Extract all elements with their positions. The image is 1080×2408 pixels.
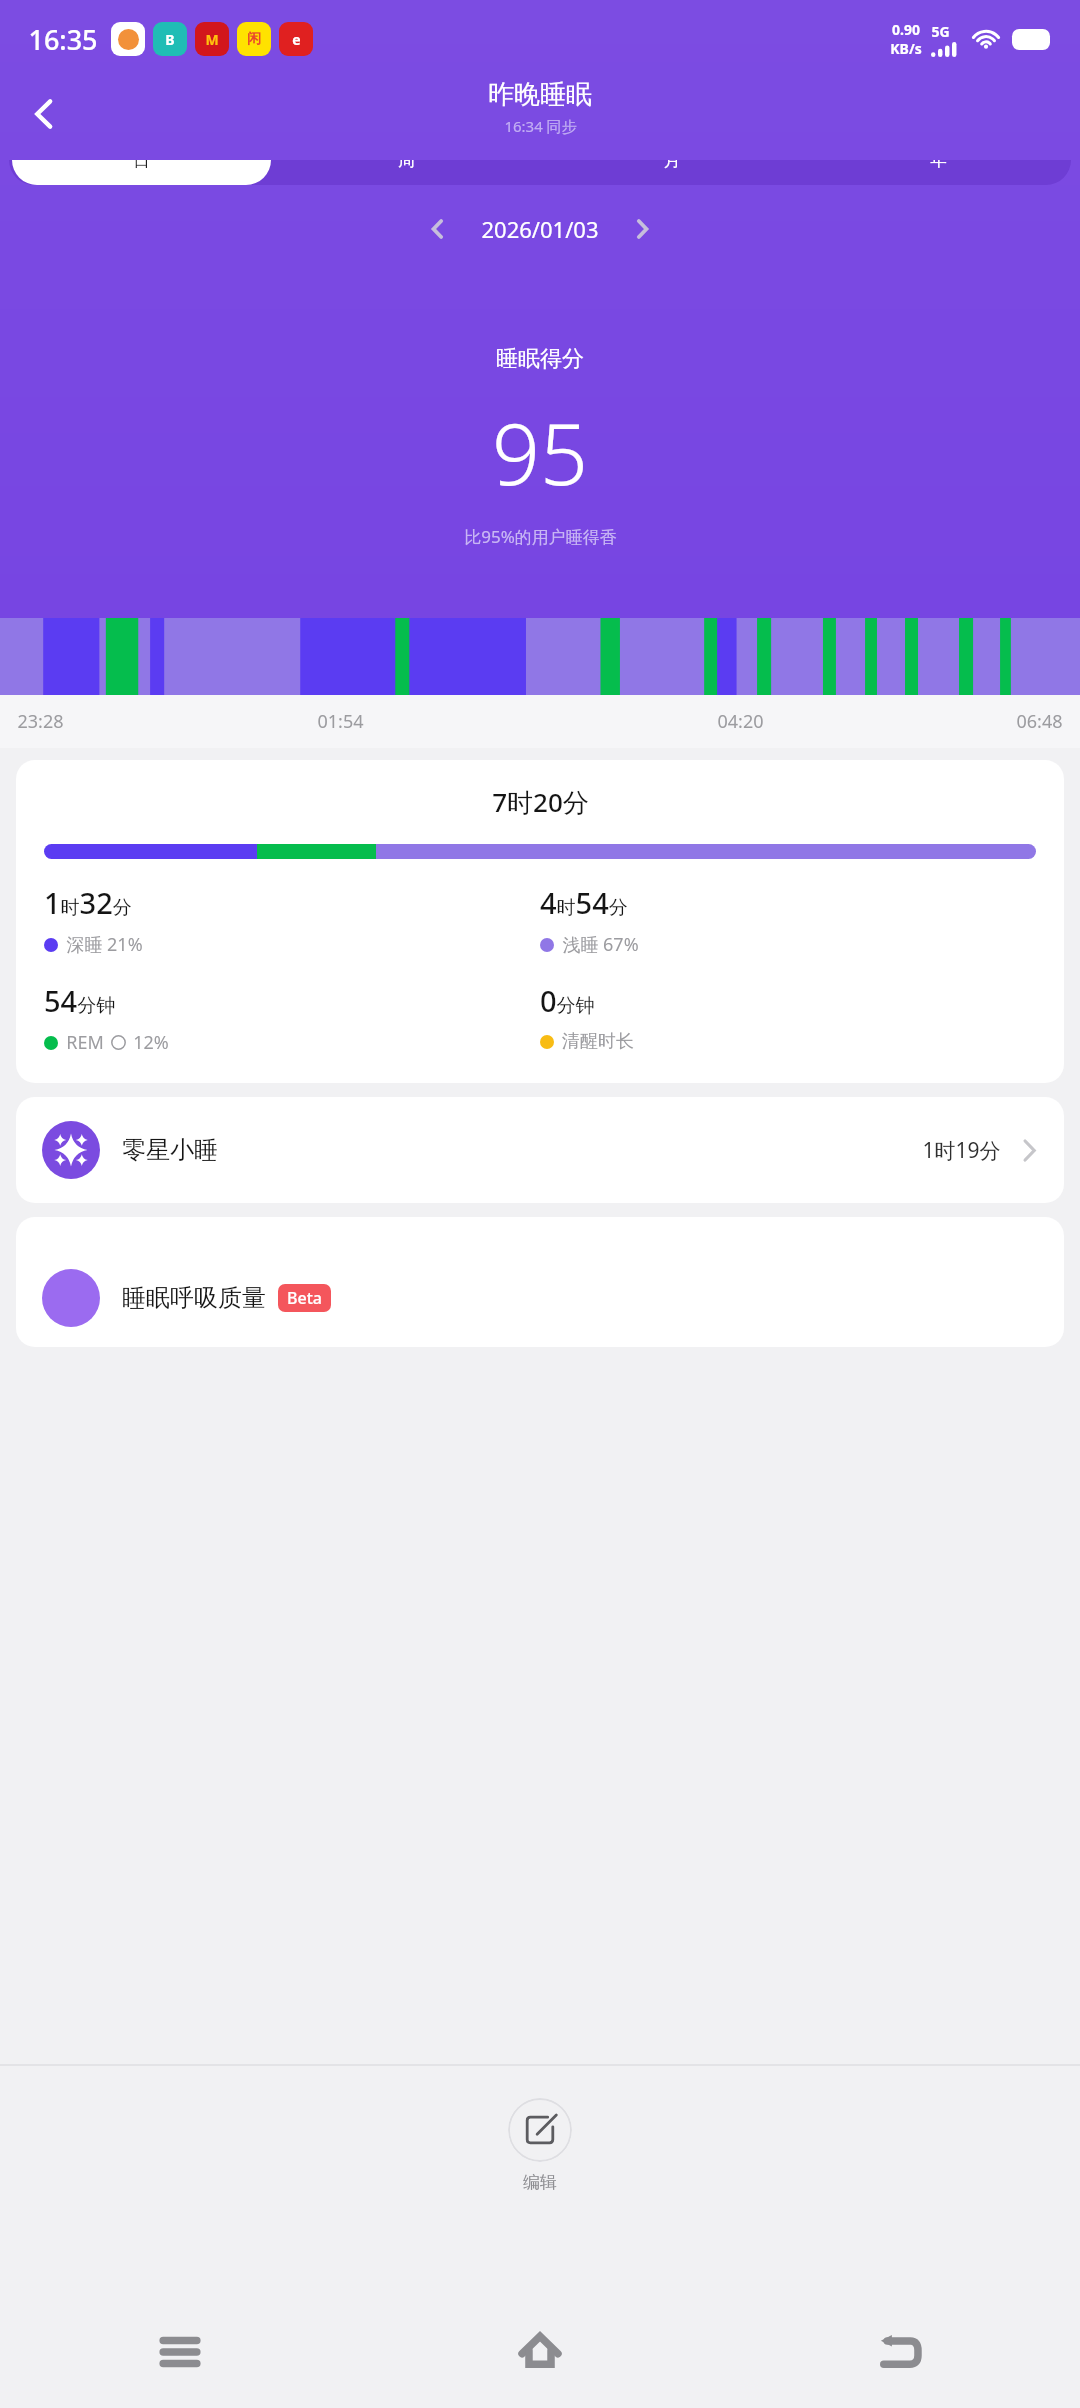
staticText: 周 [398, 160, 415, 171]
staticText: 16:34 同步 [504, 116, 577, 136]
staticText: REM [66, 1030, 104, 1055]
button[interactable]: 日 [12, 160, 271, 185]
staticText: KB/s [890, 39, 922, 58]
staticText: 闲 [247, 30, 261, 48]
staticText: 零星小睡 [122, 1135, 218, 1165]
button[interactable]: 月 [542, 160, 802, 185]
staticText: 日 [133, 160, 150, 171]
staticText: 2026/01/03 [481, 214, 599, 244]
staticText: 睡眠得分 [496, 345, 584, 373]
staticText: e [292, 30, 301, 49]
button[interactable]: Recent apps [0, 2296, 360, 2408]
staticText: M [205, 30, 219, 49]
staticText: 16:35 [28, 21, 98, 58]
staticText: 1时32分 [44, 883, 132, 922]
staticText: 编辑 [523, 2172, 557, 2193]
button[interactable]: Back [720, 2296, 1080, 2408]
staticText: 昨晚睡眠 [488, 78, 592, 111]
button[interactable]: 年 [808, 160, 1068, 185]
staticText: 1时19分 [922, 1136, 1001, 1165]
staticText: 睡眠呼吸质量 [122, 1283, 266, 1313]
staticText: 23:28 [17, 709, 64, 734]
button[interactable]: 睡眠呼吸质量 [16, 1217, 1064, 1347]
staticText: 95 [492, 395, 588, 509]
staticText: 01:54 [317, 709, 364, 734]
button[interactable]: 周 [277, 160, 536, 185]
staticText: 4时54分 [540, 883, 628, 922]
staticText: 5G [931, 22, 950, 41]
button[interactable]: Previous day [415, 206, 461, 252]
button[interactable]: Edit [502, 2092, 578, 2199]
other: Edit [508, 2098, 572, 2162]
staticText: 月 [664, 160, 681, 171]
staticText: 12% [133, 1030, 169, 1055]
staticText: B [165, 30, 175, 49]
button[interactable]: 零星小睡 [16, 1097, 1064, 1203]
staticText: 清醒时长 [562, 1030, 634, 1053]
staticText: 0分钟 [540, 981, 595, 1020]
staticText: 比95%的用户睡得香 [464, 525, 617, 548]
button[interactable]: 7时20分 [16, 760, 1064, 1083]
button[interactable]: Back [16, 86, 72, 142]
button[interactable]: Home [360, 2296, 720, 2408]
staticText: Beta [287, 1287, 322, 1309]
button[interactable]: Next day [619, 206, 665, 252]
staticText: 54分钟 [44, 981, 116, 1020]
staticText: 深睡 21% [66, 932, 143, 957]
staticText: 浅睡 67% [562, 932, 639, 957]
staticText: 年 [930, 160, 947, 171]
staticText: 04:20 [717, 709, 764, 734]
staticText: 06:48 [1016, 709, 1063, 734]
staticText: 0.90 [892, 20, 920, 39]
staticText: 7时20分 [492, 784, 589, 820]
